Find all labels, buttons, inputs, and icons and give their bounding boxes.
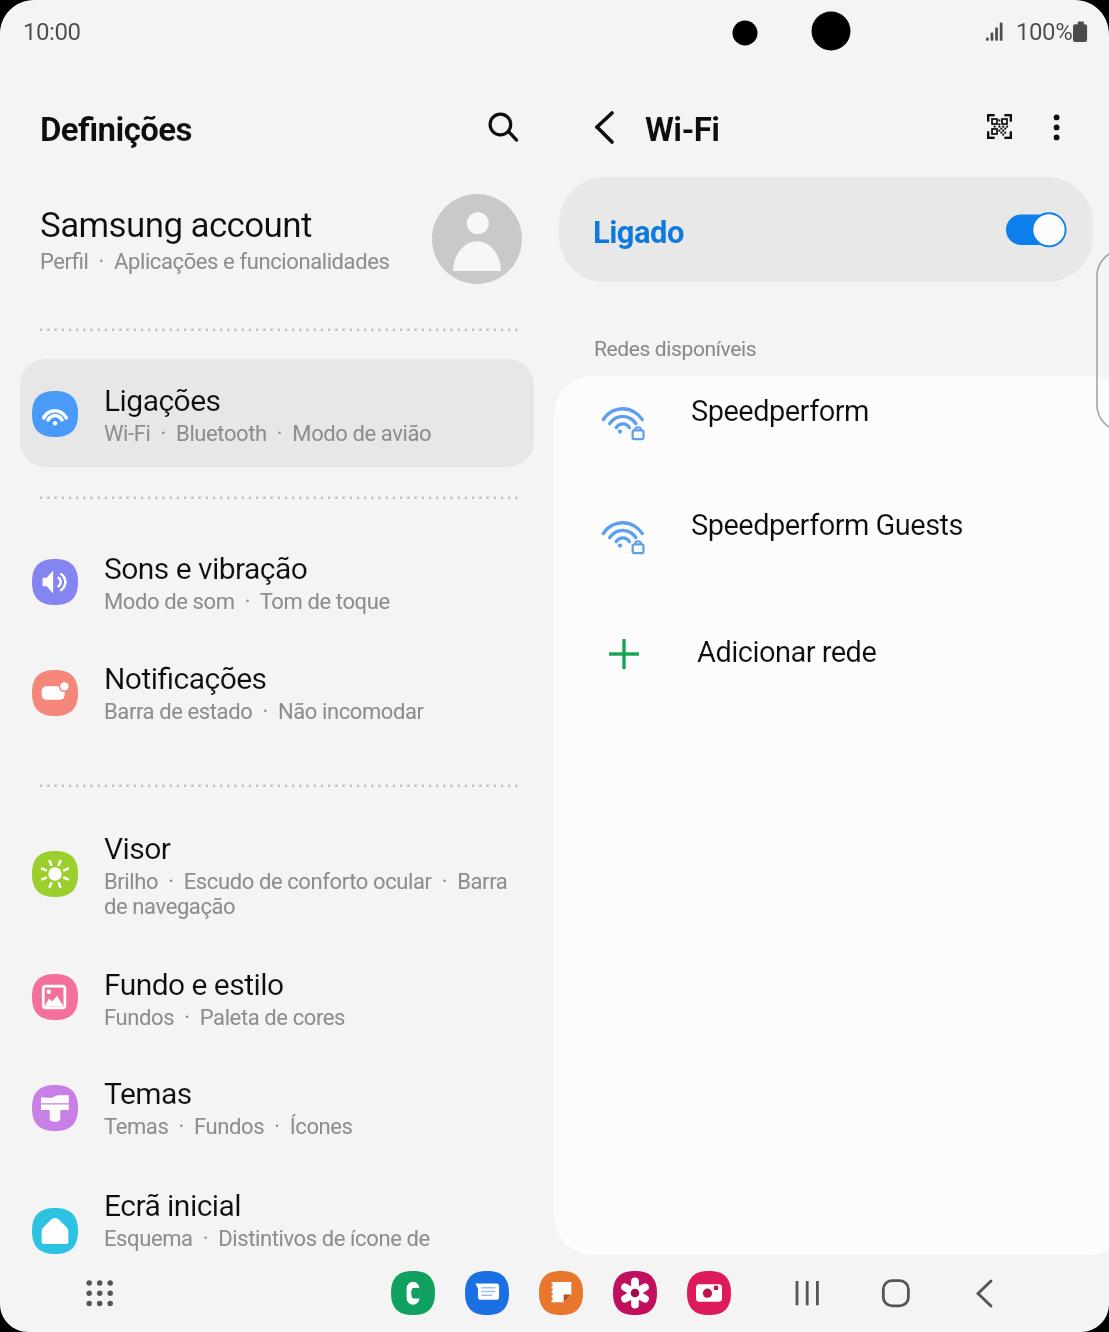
staticText: Redes disponíveis	[594, 337, 757, 362]
staticText: Temas	[104, 1076, 192, 1111]
button[interactable]	[0, 1172, 555, 1246]
staticText: Speedperform	[691, 394, 869, 428]
button[interactable]: Phone	[391, 1271, 435, 1315]
button[interactable]: Adicionar rede	[554, 612, 1109, 692]
staticText: Visor	[104, 831, 171, 866]
button[interactable]: Back	[581, 101, 633, 153]
button[interactable]: Recents	[782, 1268, 834, 1320]
button[interactable]: Back	[958, 1268, 1010, 1320]
button[interactable]: Notes	[539, 1271, 583, 1315]
staticText: Ligado	[593, 214, 684, 250]
staticText: Perfil · Aplicações e funcionalidades	[40, 249, 390, 275]
staticText: Modo de som · Tom de toque	[104, 589, 390, 615]
button[interactable]	[0, 815, 555, 915]
staticText: 10:00	[23, 18, 81, 46]
staticText: Brilho · Escudo de conforto ocular · Bar…	[104, 869, 508, 895]
staticText: Fundos · Paleta de cores	[104, 1005, 346, 1031]
staticText: Fundo e estilo	[104, 967, 284, 1002]
button[interactable]	[20, 359, 534, 467]
button[interactable]	[0, 535, 555, 609]
staticText: Temas · Fundos · Ícones	[104, 1114, 353, 1140]
button[interactable]	[0, 1060, 555, 1134]
staticText: Speedperform Guests	[691, 508, 964, 542]
staticText: Sons e vibração	[104, 551, 308, 586]
staticText: Ecrã inicial	[104, 1188, 242, 1223]
staticText: Adicionar rede	[697, 635, 877, 669]
button[interactable]	[0, 645, 555, 719]
button[interactable]	[559, 177, 1093, 282]
staticText: Ligações	[104, 383, 221, 418]
button[interactable]	[554, 489, 1109, 581]
staticText: Notificações	[104, 661, 267, 696]
button[interactable]	[0, 367, 555, 441]
staticText: Wi-Fi · Bluetooth · Modo de avião	[104, 421, 432, 447]
button[interactable]: Gallery	[613, 1271, 657, 1315]
button[interactable]: Apps	[76, 1268, 126, 1318]
staticText: Wi-Fi	[645, 110, 720, 149]
staticText: Barra de estado · Não incomodar	[104, 699, 424, 725]
button[interactable]: Search	[476, 100, 526, 150]
staticText: Esquema · Distintivos de ícone de	[104, 1226, 430, 1252]
button[interactable]: Scan QR code	[987, 114, 1012, 139]
button[interactable]	[0, 951, 555, 1025]
button[interactable]: Home	[870, 1268, 922, 1320]
button[interactable]: Messages	[465, 1271, 509, 1315]
button[interactable]	[554, 375, 1109, 467]
staticText: 100%	[1016, 18, 1073, 46]
staticText: Definições	[40, 110, 192, 149]
button[interactable]	[0, 196, 555, 288]
staticText: Samsung account	[40, 205, 312, 246]
staticText: de navegação	[104, 894, 236, 920]
button[interactable]: Camera	[687, 1271, 731, 1315]
button[interactable]: More options	[1033, 103, 1081, 151]
